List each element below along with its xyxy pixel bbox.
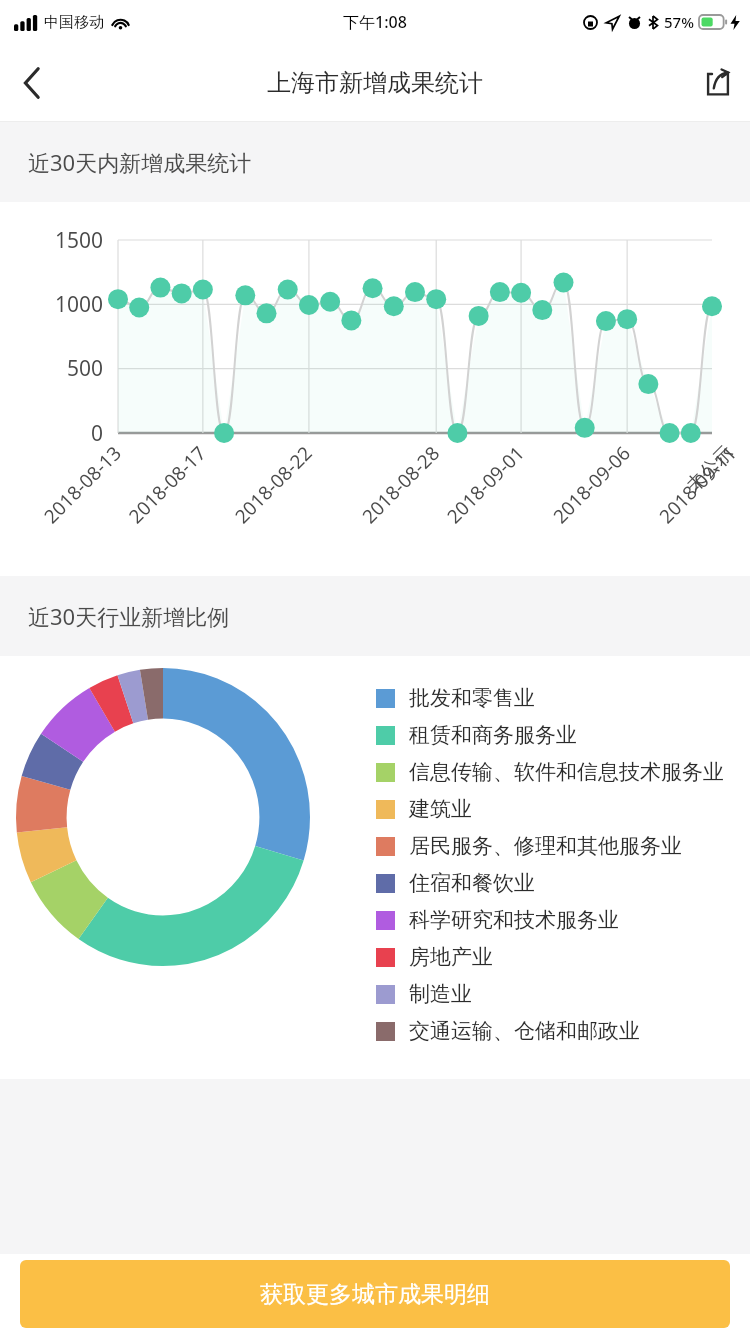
- staticText: 租赁和商务服务业: [409, 722, 577, 748]
- staticText: 建筑业: [409, 796, 472, 822]
- button[interactable]: 科学研究和技术服务业: [376, 902, 750, 938]
- button[interactable]: 建筑业: [376, 791, 750, 827]
- staticText: 获取更多城市成果明细: [260, 1280, 490, 1309]
- button[interactable]: 租赁和商务服务业: [376, 717, 750, 753]
- staticText: 批发和零售业: [409, 685, 535, 711]
- staticText: 57%: [664, 12, 694, 32]
- staticText: 上海市新增成果统计: [267, 68, 483, 98]
- button[interactable]: 交通运输、仓储和邮政业: [376, 1013, 750, 1049]
- staticText: 房地产业: [409, 944, 493, 970]
- staticText: 中国移动: [44, 13, 104, 32]
- staticText: 住宿和餐饮业: [409, 870, 535, 896]
- staticText: 科学研究和技术服务业: [409, 907, 619, 933]
- button[interactable]: Share: [686, 44, 750, 121]
- button[interactable]: 房地产业: [376, 939, 750, 975]
- button[interactable]: 制造业: [376, 976, 750, 1012]
- button[interactable]: 批发和零售业: [376, 680, 750, 716]
- button[interactable]: Back: [0, 44, 64, 121]
- staticText: 下午1:08: [343, 11, 407, 33]
- staticText: 交通运输、仓储和邮政业: [409, 1018, 640, 1044]
- staticText: 居民服务、修理和其他服务业: [409, 833, 682, 859]
- staticText: 近30天内新增成果统计: [28, 147, 252, 177]
- button[interactable]: 获取更多城市成果明细: [20, 1260, 730, 1328]
- button[interactable]: 居民服务、修理和其他服务业: [376, 828, 750, 864]
- staticText: 近30天行业新增比例: [28, 601, 230, 631]
- staticText: 信息传输、软件和信息技术服务业: [409, 759, 724, 785]
- button[interactable]: 住宿和餐饮业: [376, 865, 750, 901]
- staticText: 制造业: [409, 981, 472, 1007]
- button[interactable]: 信息传输、软件和信息技术服务业: [376, 754, 750, 790]
